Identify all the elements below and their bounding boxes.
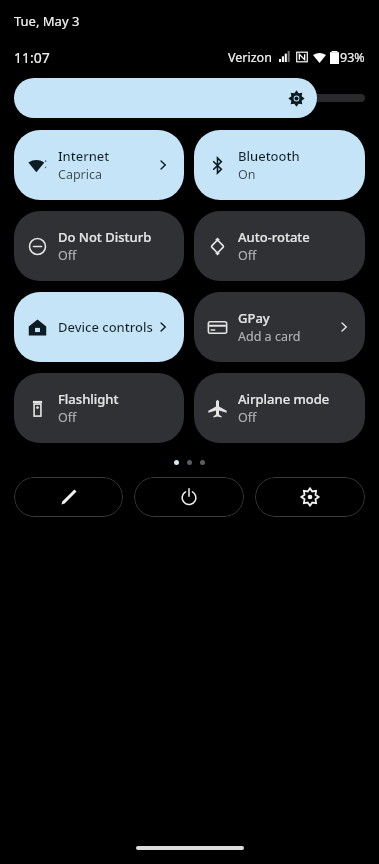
button[interactable]: Settings [255, 477, 365, 517]
button[interactable]: Do Not Disturb [14, 211, 184, 281]
staticText: Internet [58, 147, 110, 165]
staticText: Flashlight [58, 390, 119, 408]
staticText: On [238, 166, 256, 183]
button[interactable]: Device controls [14, 292, 184, 362]
button[interactable]: Edit [14, 477, 123, 517]
staticText: 93% [340, 49, 365, 66]
staticText: Do Not Disturb [58, 228, 152, 246]
staticText: GPay [238, 309, 270, 327]
button[interactable]: GPay [194, 292, 365, 362]
staticText: Caprica [58, 166, 103, 183]
button[interactable]: Auto-rotate [194, 211, 365, 281]
button[interactable]: Brightness [14, 78, 317, 118]
button[interactable]: Flashlight [14, 373, 184, 443]
button[interactable]: Internet [14, 130, 184, 200]
staticText: Add a card [238, 328, 301, 345]
staticText: Off [58, 409, 77, 426]
staticText: Airplane mode [238, 390, 330, 408]
staticText: Off [238, 247, 257, 264]
staticText: Off [238, 409, 257, 426]
button[interactable]: Bluetooth [194, 130, 365, 200]
staticText: 11:07 [14, 48, 50, 67]
button[interactable]: Airplane mode [194, 373, 365, 443]
staticText: Bluetooth [238, 147, 300, 165]
staticText: Auto-rotate [238, 228, 310, 246]
staticText: Verizon [228, 49, 272, 66]
staticText: Off [58, 247, 77, 264]
button[interactable]: Power [134, 477, 244, 517]
staticText: Device controls [58, 318, 153, 336]
staticText: Tue, May 3 [14, 12, 80, 30]
other: Brightness [288, 90, 305, 107]
